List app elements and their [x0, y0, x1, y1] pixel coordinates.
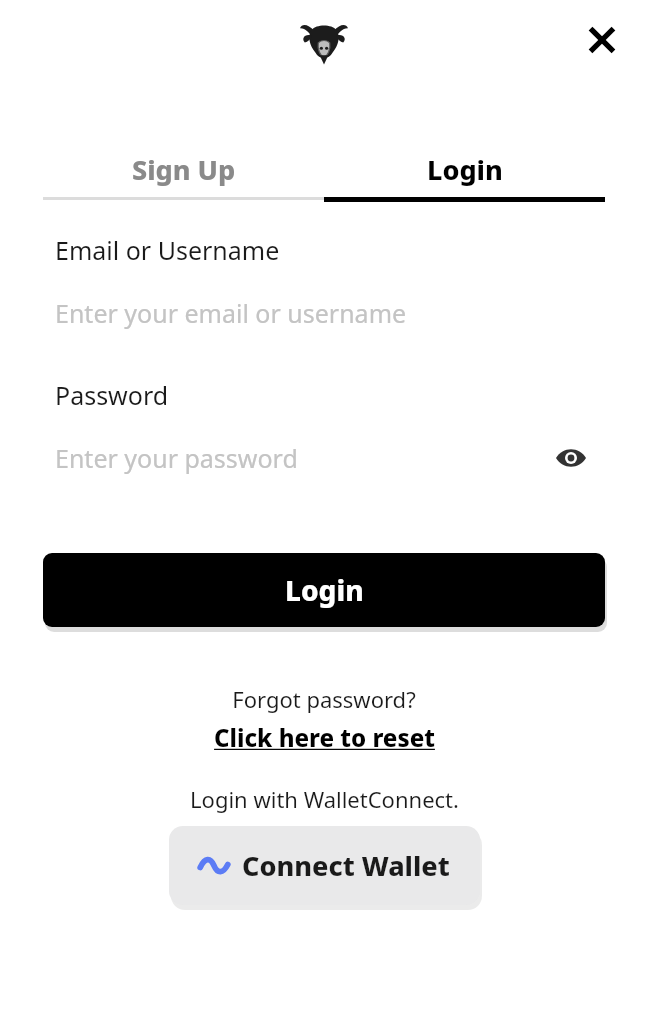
staticText: Click here to reset: [214, 721, 435, 754]
button[interactable]: Show password: [549, 436, 593, 480]
staticText: Login: [285, 571, 364, 609]
staticText: Forgot password?: [232, 684, 416, 714]
staticText: Enter your email or username: [55, 296, 407, 330]
staticText: Connect Wallet: [242, 847, 450, 884]
button[interactable]: Login: [324, 141, 605, 197]
button[interactable]: Login: [43, 553, 605, 627]
staticText: Password: [55, 378, 169, 412]
staticText: Sign Up: [132, 151, 236, 188]
button[interactable]: Enter your password: [55, 436, 593, 480]
staticText: Login: [427, 151, 503, 188]
button[interactable]: Connect Wallet: [169, 826, 480, 905]
button[interactable]: Sign Up: [43, 141, 324, 197]
button[interactable]: Click here to reset: [208, 719, 441, 756]
staticText: Email or Username: [55, 233, 280, 267]
staticText: Enter your password: [55, 441, 298, 475]
button[interactable]: Enter your email or username: [55, 291, 593, 335]
button[interactable]: Close: [574, 12, 630, 68]
staticText: Login with WalletConnect.: [190, 784, 459, 814]
